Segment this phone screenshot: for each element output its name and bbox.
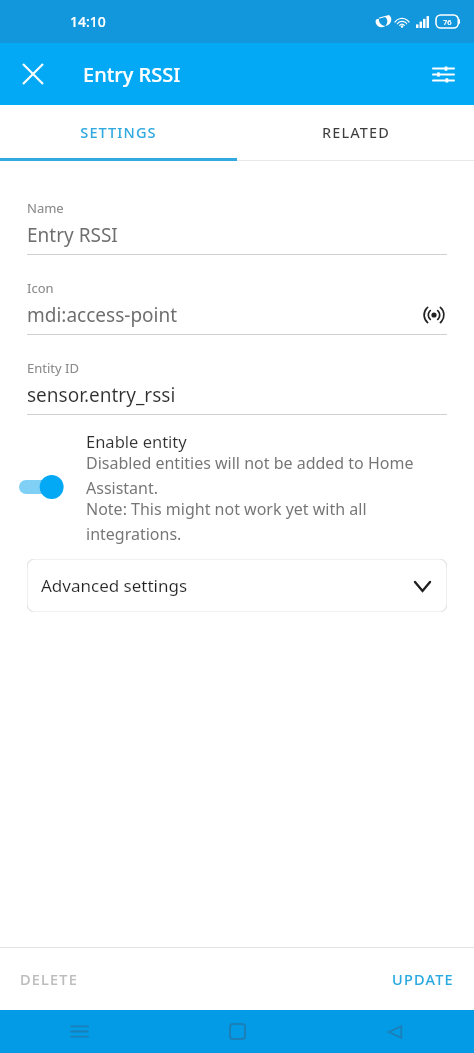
- button[interactable]: Home: [158, 1010, 316, 1053]
- button[interactable]: DELETE: [6, 959, 92, 999]
- button[interactable]: Close: [11, 52, 55, 96]
- staticText: Entry RSSI: [27, 222, 447, 248]
- staticText: Entry RSSI: [83, 61, 181, 88]
- staticText: RELATED: [322, 122, 390, 142]
- button[interactable]: SETTINGS: [0, 105, 237, 158]
- staticText: DELETE: [20, 969, 78, 989]
- staticText: UPDATE: [392, 969, 454, 989]
- button[interactable]: UPDATE: [378, 959, 468, 999]
- staticText: SETTINGS: [80, 122, 157, 142]
- button[interactable]: Recent apps: [0, 1010, 158, 1053]
- staticText: Name: [27, 199, 64, 217]
- button[interactable]: Name: [27, 199, 447, 255]
- staticText: Note: This might not work yet with all i…: [86, 498, 454, 544]
- button[interactable]: Back: [316, 1010, 474, 1053]
- button[interactable]: Entity ID: [27, 359, 447, 415]
- button[interactable]: RELATED: [237, 105, 474, 158]
- staticText: Disabled entities will not be added to H…: [86, 452, 454, 498]
- staticText: sensor.entry_rssi: [27, 382, 447, 408]
- button[interactable]: Advanced settings: [27, 559, 447, 612]
- staticText: Enable entity: [86, 430, 187, 452]
- button[interactable]: Enable entity toggle: [19, 474, 67, 500]
- staticText: Icon: [27, 279, 54, 297]
- button[interactable]: Icon: [27, 279, 447, 335]
- staticText: 76: [443, 17, 452, 27]
- staticText: Entity ID: [27, 359, 79, 377]
- staticText: 14:10: [70, 12, 106, 31]
- button[interactable]: Enable entity toggle: [0, 429, 474, 545]
- staticText: Advanced settings: [41, 574, 188, 597]
- staticText: mdi:access-point: [27, 302, 421, 328]
- button[interactable]: Filter settings: [421, 52, 465, 96]
